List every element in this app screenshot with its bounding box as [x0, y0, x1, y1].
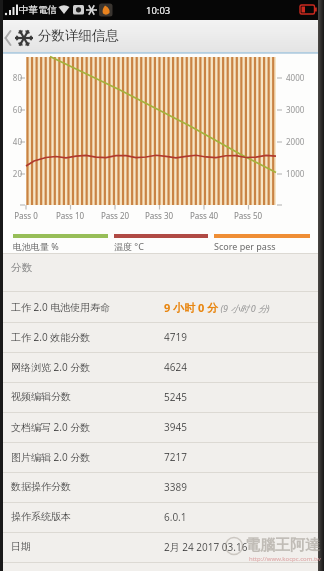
staticText: Pass 0: [8, 210, 44, 221]
staticText: 网络浏览 2.0 分数: [11, 360, 91, 374]
staticText: Pass 50: [230, 210, 266, 221]
staticText: 4624: [164, 360, 187, 374]
staticText: 视频编辑分数: [11, 390, 71, 403]
staticText: Pass 40: [186, 210, 222, 221]
staticText: 4000: [286, 72, 305, 83]
staticText: 图片编辑 2.0 分数: [11, 450, 91, 464]
staticText: 温度 °C: [114, 240, 144, 252]
staticText: 10:03: [146, 4, 171, 17]
staticText: Pass 20: [97, 210, 133, 221]
button[interactable]: 工作 2.0 电池使用寿命: [0, 292, 324, 322]
button[interactable]: 工作 2.0 效能分数: [0, 322, 324, 352]
staticText: 3945: [164, 420, 187, 434]
staticText: 3389: [164, 480, 187, 494]
staticText: 電腦王阿達: [245, 536, 320, 555]
staticText: Score per pass: [214, 240, 276, 252]
staticText: 9 小时 0 分 (9 小时 0 分): [164, 300, 270, 315]
button[interactable]: 操作系统版本: [0, 502, 324, 532]
button[interactable]: [0, 20, 36, 52]
staticText: 工作 2.0 效能分数: [11, 330, 91, 344]
staticText: 7217: [164, 450, 187, 464]
staticText: 2月 24 2017 03.16: [164, 540, 248, 554]
button[interactable]: 文档编写 2.0 分数: [0, 412, 324, 442]
staticText: 文档编写 2.0 分数: [11, 420, 91, 434]
staticText: 3000: [286, 104, 305, 115]
staticText: 中華電信: [19, 4, 57, 16]
staticText: 分数详细信息: [38, 27, 119, 44]
staticText: 80: [8, 72, 22, 83]
button[interactable]: 网络浏览 2.0 分数: [0, 352, 324, 382]
button[interactable]: 数据操作分数: [0, 472, 324, 502]
staticText: 日期: [11, 540, 31, 553]
staticText: 数据操作分数: [11, 480, 71, 493]
staticText: 2000: [286, 136, 305, 147]
staticText: 6.0.1: [164, 510, 187, 524]
button[interactable]: 视频编辑分数: [0, 382, 324, 412]
staticText: 工作 2.0 电池使用寿命: [11, 300, 111, 314]
button[interactable]: 日期: [0, 532, 324, 562]
staticText: 20: [8, 168, 22, 179]
staticText: 40: [8, 136, 22, 147]
staticText: 1000: [286, 168, 305, 179]
staticText: 60: [8, 104, 22, 115]
staticText: 电池电量 %: [13, 240, 59, 252]
staticText: 操作系统版本: [11, 510, 71, 523]
staticText: 4719: [164, 330, 187, 344]
button[interactable]: 图片编辑 2.0 分数: [0, 442, 324, 472]
staticText: Pass 10: [52, 210, 88, 221]
staticText: 5245: [164, 390, 187, 404]
staticText: http://www.kocpc.com.tw: [249, 555, 321, 563]
staticText: 分数: [11, 261, 32, 274]
staticText: Pass 30: [141, 210, 177, 221]
